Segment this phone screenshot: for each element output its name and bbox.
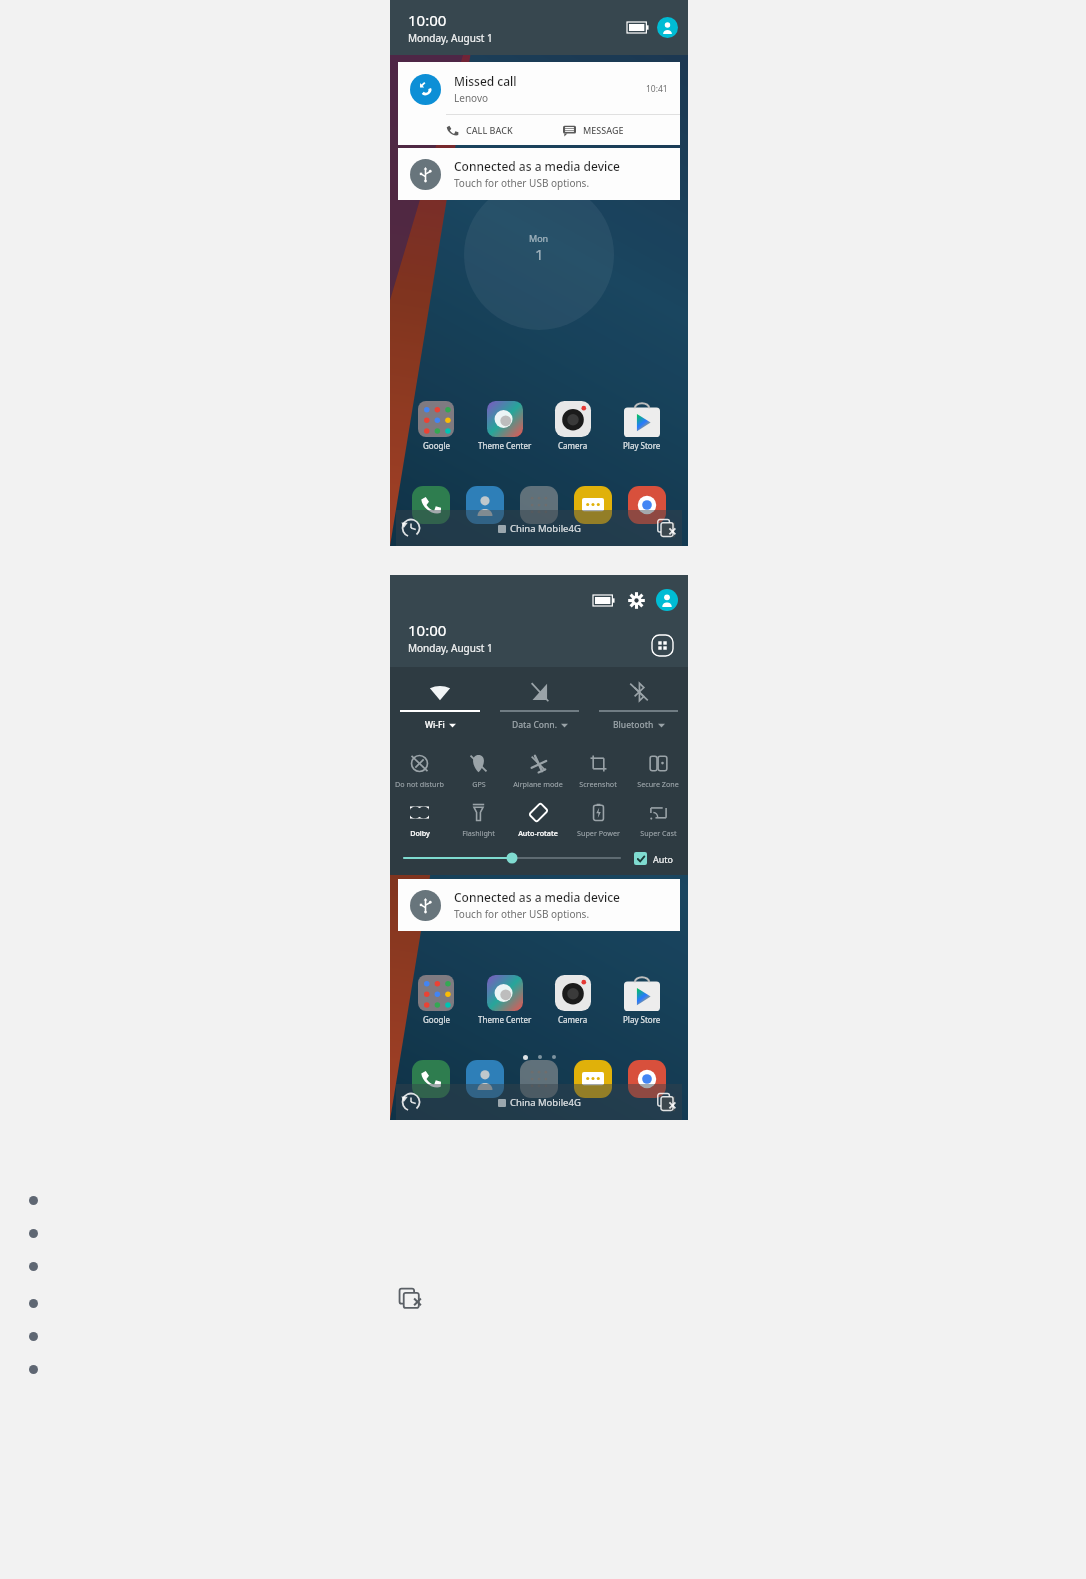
button[interactable]: Theme Center — [474, 401, 536, 451]
button[interactable]: Connected as a media device — [398, 148, 680, 200]
staticText: Camera — [558, 440, 588, 451]
staticText: Super Cast — [640, 828, 677, 838]
button[interactable]: Settings — [626, 590, 646, 610]
staticText: Connected as a media device — [454, 889, 620, 905]
button[interactable]: Wi-Fi — [390, 673, 490, 745]
staticText: Auto — [653, 853, 674, 865]
staticText: Secure Zone — [637, 779, 679, 789]
staticText: Super Power — [577, 828, 620, 838]
button[interactable]: Camera — [542, 975, 604, 1025]
staticText: Auto-rotate — [518, 828, 558, 838]
staticText: Wi-Fi — [425, 719, 445, 731]
staticText: Theme Center — [478, 1014, 532, 1025]
button[interactable] — [412, 486, 450, 524]
staticText: 10:41 — [646, 83, 668, 95]
button[interactable]: Do not disturb — [390, 751, 449, 792]
staticText: Screenshot — [579, 779, 617, 789]
staticText: 1 — [535, 244, 544, 264]
button[interactable]: Google — [405, 401, 467, 451]
button[interactable] — [574, 486, 612, 524]
button[interactable]: Super Power — [568, 800, 628, 841]
button[interactable]: Bluetooth — [589, 673, 688, 745]
staticText: 10:00 — [408, 620, 447, 640]
button[interactable]: Super Cast — [628, 800, 688, 841]
button[interactable] — [520, 486, 558, 524]
staticText: Connected as a media device — [454, 158, 620, 174]
button[interactable]: Google — [405, 975, 467, 1025]
staticText: Mon — [529, 232, 549, 244]
button[interactable]: Airplane mode — [508, 751, 568, 792]
button[interactable] — [574, 1060, 612, 1098]
button[interactable]: Missed call — [398, 62, 680, 145]
button[interactable]: Clear all — [652, 1087, 682, 1117]
staticText: Missed call — [454, 73, 517, 89]
button[interactable] — [628, 486, 666, 524]
staticText: Dolby — [410, 828, 430, 838]
button[interactable] — [628, 1060, 666, 1098]
staticText: Do not disturb — [395, 779, 444, 789]
button[interactable]: User — [657, 17, 678, 38]
button[interactable] — [520, 1060, 558, 1098]
staticText: Bluetooth — [613, 719, 654, 731]
button[interactable]: Screenshot — [568, 751, 628, 792]
staticText: Monday, August 1 — [408, 641, 493, 655]
button[interactable]: CALL BACK — [446, 115, 563, 145]
staticText: Google — [423, 440, 450, 451]
staticText: Lenovo — [454, 91, 489, 105]
button[interactable]: Camera — [542, 401, 604, 451]
button[interactable]: Clear all — [652, 513, 682, 543]
staticText: Play Store — [623, 440, 661, 451]
button[interactable]: Dolby — [390, 800, 449, 841]
staticText: 10:00 — [408, 10, 447, 30]
button[interactable]: GPS — [449, 751, 508, 792]
button[interactable]: Flashlight — [449, 800, 508, 841]
button[interactable]: Data Conn. — [490, 673, 589, 745]
staticText: Airplane mode — [513, 779, 563, 789]
staticText: Monday, August 1 — [408, 31, 493, 45]
staticText: Touch for other USB options. — [454, 176, 590, 190]
button[interactable]: MESSAGE — [563, 115, 680, 145]
button[interactable] — [466, 1060, 504, 1098]
button[interactable]: Auto — [634, 852, 674, 865]
staticText: MESSAGE — [583, 124, 624, 136]
button[interactable]: Edit tiles — [651, 634, 674, 657]
staticText: Google — [423, 1014, 450, 1025]
staticText: Camera — [558, 1014, 588, 1025]
button[interactable]: Recent — [396, 1087, 426, 1117]
staticText: CALL BACK — [466, 124, 513, 136]
button[interactable]: User — [656, 589, 678, 611]
button[interactable]: Recent — [396, 513, 426, 543]
staticText: China Mobile4G — [510, 1096, 581, 1109]
button[interactable]: Secure Zone — [628, 751, 688, 792]
button[interactable]: Auto-rotate — [508, 800, 568, 841]
staticText: GPS — [472, 779, 486, 789]
button[interactable]: Play Store — [611, 401, 673, 451]
staticText: Flashlight — [462, 828, 495, 838]
button[interactable]: Connected as a media device — [398, 879, 680, 931]
staticText: China Mobile4G — [510, 522, 581, 535]
staticText: Theme Center — [478, 440, 532, 451]
button[interactable]: Play Store — [611, 975, 673, 1025]
button[interactable]: Theme Center — [474, 975, 536, 1025]
staticText: Data Conn. — [512, 719, 557, 731]
staticText: Play Store — [623, 1014, 661, 1025]
button[interactable] — [466, 486, 504, 524]
button[interactable]: Remove duplicate — [398, 1285, 424, 1311]
staticText: Touch for other USB options. — [454, 907, 590, 921]
button[interactable] — [412, 1060, 450, 1098]
